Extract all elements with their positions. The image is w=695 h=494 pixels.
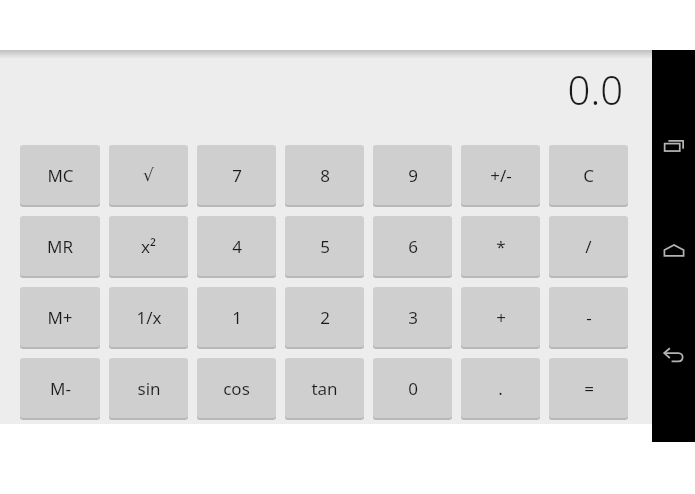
button[interactable]: - bbox=[549, 287, 628, 347]
button[interactable]: * bbox=[461, 216, 540, 276]
staticText: 7 bbox=[232, 164, 242, 187]
button[interactable]: sin bbox=[109, 358, 188, 418]
button[interactable]: . bbox=[461, 358, 540, 418]
staticText: / bbox=[585, 235, 592, 258]
staticText: +/- bbox=[490, 164, 512, 187]
staticText: 0.0 bbox=[567, 62, 623, 116]
staticText: tan bbox=[311, 377, 338, 400]
staticText: - bbox=[586, 306, 592, 329]
staticText: 2 bbox=[320, 306, 330, 329]
staticText: + bbox=[496, 306, 506, 329]
staticText: 0 bbox=[408, 377, 418, 400]
staticText: 9 bbox=[408, 164, 418, 187]
staticText: √ bbox=[143, 165, 154, 185]
button[interactable]: +/- bbox=[461, 145, 540, 205]
staticText: M- bbox=[50, 377, 71, 400]
button[interactable]: + bbox=[461, 287, 540, 347]
staticText: x² bbox=[141, 235, 156, 258]
staticText: 1/x bbox=[136, 306, 162, 329]
staticText: 6 bbox=[408, 235, 418, 258]
staticText: sin bbox=[137, 377, 161, 400]
button[interactable]: C bbox=[549, 145, 628, 205]
button[interactable]: Recent apps bbox=[660, 132, 688, 160]
button[interactable]: 0 bbox=[373, 358, 452, 418]
button[interactable]: 2 bbox=[285, 287, 364, 347]
button[interactable]: 1 bbox=[197, 287, 276, 347]
button[interactable]: x² bbox=[109, 216, 188, 276]
button[interactable]: 9 bbox=[373, 145, 452, 205]
button[interactable]: / bbox=[549, 216, 628, 276]
staticText: . bbox=[498, 377, 503, 400]
staticText: MR bbox=[47, 235, 73, 258]
staticText: 5 bbox=[320, 235, 330, 258]
staticText: = bbox=[584, 377, 594, 400]
button[interactable]: √ bbox=[109, 145, 188, 205]
button[interactable]: MC bbox=[20, 145, 100, 205]
button[interactable]: cos bbox=[197, 358, 276, 418]
button[interactable]: 8 bbox=[285, 145, 364, 205]
staticText: C bbox=[583, 164, 594, 187]
staticText: 1 bbox=[232, 306, 242, 329]
staticText: 8 bbox=[320, 164, 330, 187]
button[interactable]: M- bbox=[20, 358, 100, 418]
button[interactable]: = bbox=[549, 358, 628, 418]
button[interactable]: 7 bbox=[197, 145, 276, 205]
staticText: * bbox=[496, 235, 506, 258]
button[interactable]: M+ bbox=[20, 287, 100, 347]
button[interactable]: 6 bbox=[373, 216, 452, 276]
button[interactable]: 3 bbox=[373, 287, 452, 347]
staticText: cos bbox=[223, 377, 250, 400]
button[interactable]: Home bbox=[660, 237, 688, 265]
staticText: MC bbox=[47, 164, 74, 187]
staticText: 4 bbox=[232, 235, 242, 258]
button[interactable]: 4 bbox=[197, 216, 276, 276]
button[interactable]: 5 bbox=[285, 216, 364, 276]
staticText: 3 bbox=[408, 306, 418, 329]
button[interactable]: MR bbox=[20, 216, 100, 276]
button[interactable]: tan bbox=[285, 358, 364, 418]
button[interactable]: Back bbox=[660, 342, 688, 370]
button[interactable]: 1/x bbox=[109, 287, 188, 347]
staticText: M+ bbox=[47, 306, 73, 329]
